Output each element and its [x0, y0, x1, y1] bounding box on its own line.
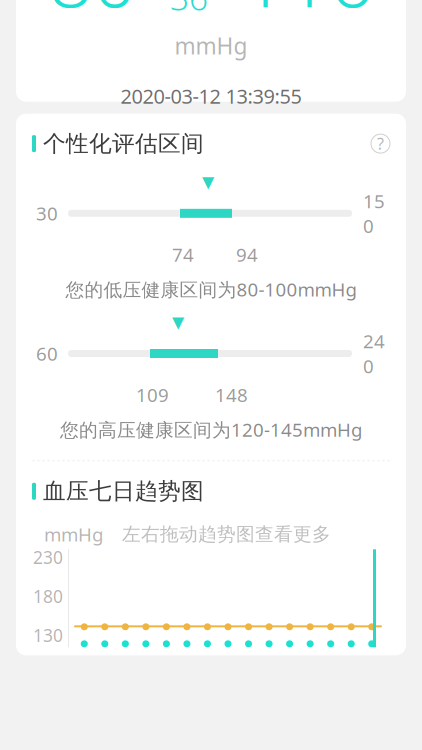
staticText: 109	[136, 382, 169, 407]
staticText: 74	[172, 242, 194, 267]
staticText: mmHg	[174, 30, 247, 61]
staticText: 36	[170, 0, 208, 20]
staticText: 80	[48, 0, 136, 29]
staticText: 60	[36, 341, 58, 366]
staticText: 30	[36, 201, 58, 226]
staticText: 116	[241, 0, 373, 29]
staticText: 240	[363, 329, 385, 378]
staticText: 94	[236, 242, 258, 267]
staticText: 个性化评估区间	[43, 130, 204, 157]
staticText: 您的低压健康区间为80-100mmHg	[65, 277, 356, 302]
staticText: 130	[33, 624, 63, 647]
staticText: 血压七日趋势图	[43, 477, 204, 505]
staticText: mmHg	[44, 522, 103, 547]
staticText: 148	[215, 382, 248, 407]
staticText: 您的高压健康区间为120-145mmHg	[60, 417, 362, 442]
staticText: ▼	[172, 313, 184, 331]
button[interactable]: 帮助说明	[371, 134, 390, 153]
staticText: ▼	[202, 173, 214, 191]
staticText: 2020-03-12 13:39:55	[120, 83, 301, 109]
staticText: 180	[33, 585, 63, 608]
staticText: 150	[363, 188, 385, 238]
staticText: ?	[377, 133, 384, 154]
staticText: 230	[33, 546, 63, 569]
staticText: 左右拖动趋势图查看更多	[122, 523, 331, 546]
